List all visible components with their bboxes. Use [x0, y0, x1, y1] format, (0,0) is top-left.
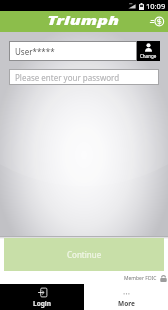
- staticText: Login: [33, 299, 51, 308]
- staticText: Triumph: [47, 11, 120, 29]
- button[interactable]: Please enter your password: [9, 69, 159, 85]
- button[interactable]: Pay: [149, 13, 166, 30]
- staticText: 10:09: [146, 1, 166, 11]
- staticText: User*****: [15, 46, 55, 57]
- button[interactable]: Continue: [4, 238, 164, 271]
- button[interactable]: User*****: [9, 41, 137, 61]
- button[interactable]: Login: [0, 284, 84, 310]
- button[interactable]: More: [84, 284, 168, 310]
- button[interactable]: Change: [137, 41, 160, 61]
- staticText: Member FDIC: [124, 275, 157, 282]
- staticText: Please enter your password: [15, 72, 120, 83]
- staticText: Change: [140, 53, 157, 59]
- staticText: More: [118, 299, 135, 308]
- staticText: Continue: [67, 249, 102, 260]
